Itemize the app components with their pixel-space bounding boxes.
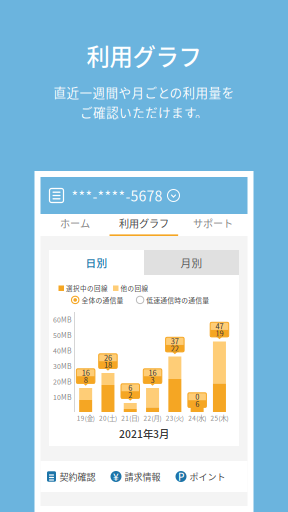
staticText: 50MB [53, 330, 72, 340]
staticText: 24(水) [188, 413, 206, 423]
staticText: 利用グラフ [86, 39, 201, 72]
staticText: 23(火) [166, 413, 184, 423]
staticText: 選択中の回線 [66, 283, 108, 293]
staticText: ¥ [113, 469, 119, 484]
staticText: 3 [151, 374, 155, 385]
staticText: 18 [104, 359, 112, 370]
staticText: 16 [149, 367, 157, 378]
staticText: 30MB [53, 361, 72, 371]
staticText: 0 [195, 391, 199, 402]
staticText: 利用グラフ [119, 216, 169, 230]
staticText: 21(日) [121, 413, 139, 423]
staticText: P [178, 469, 184, 484]
staticText: 請求情報 [124, 470, 160, 483]
staticText: 2 [128, 389, 132, 400]
button[interactable]: 契約確認 [46, 470, 95, 483]
button[interactable]: P [175, 470, 225, 483]
staticText: 26 [104, 352, 112, 363]
staticText: 8 [84, 374, 88, 385]
staticText: 16 [82, 367, 90, 378]
staticText: 全体の通信量 [81, 295, 123, 305]
staticText: 6 [128, 382, 132, 393]
button[interactable]: 低速通信時の通信量 [136, 295, 209, 305]
staticText: 19 [215, 328, 223, 339]
staticText: 直近一週間や月ごとの利用量を [53, 83, 234, 101]
staticText: ホーム [60, 216, 90, 230]
staticText: サポート [193, 216, 233, 230]
button[interactable]: サポート [178, 214, 247, 236]
staticText: ポイント [189, 470, 225, 483]
staticText: 6 [195, 398, 199, 409]
staticText: 40MB [53, 345, 72, 355]
button[interactable]: ホーム [40, 214, 109, 236]
staticText: ***-****-5678 [71, 185, 162, 206]
button[interactable]: 利用グラフ [109, 214, 178, 236]
staticText: 日別 [85, 255, 107, 270]
staticText: 22 [171, 343, 179, 354]
staticText: 2021年3月 [119, 426, 169, 441]
staticText: 10MB [53, 392, 72, 402]
staticText: 37 [171, 335, 179, 346]
staticText: 25(木) [210, 413, 228, 423]
button[interactable]: 日別 [49, 250, 144, 275]
button[interactable]: 全体の通信量 [71, 295, 123, 305]
button[interactable]: 月別 [144, 250, 239, 275]
button[interactable]: 回線を切り替え [167, 189, 179, 201]
staticText: 22(月) [143, 413, 161, 423]
staticText: ご確認いただけます。 [80, 103, 208, 121]
staticText: 20(土) [99, 413, 117, 423]
staticText: 20MB [53, 376, 72, 386]
staticText: 19(金) [77, 413, 95, 423]
button[interactable]: メニュー [49, 188, 63, 202]
staticText: 60MB [53, 314, 72, 324]
staticText: 47 [215, 320, 223, 331]
button[interactable]: ¥ [110, 470, 160, 483]
staticText: 契約確認 [59, 470, 95, 483]
staticText: 他の回線 [120, 283, 148, 293]
staticText: 月別 [180, 255, 202, 270]
staticText: 低速通信時の通信量 [146, 295, 209, 305]
